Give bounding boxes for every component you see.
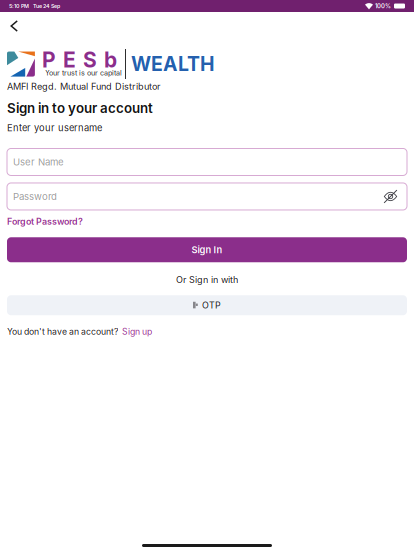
staticText: b [104, 47, 117, 73]
button[interactable]: Show password [380, 186, 402, 206]
staticText: Or Sign in with [176, 274, 238, 285]
staticText: Password [13, 191, 57, 202]
button[interactable]: Forgot Password? [7, 210, 83, 228]
staticText: 100% [375, 2, 391, 10]
staticText: User Name [13, 156, 64, 168]
staticText: S [83, 47, 97, 73]
staticText: You don't have an account? [7, 326, 118, 337]
staticText: Sign In [191, 244, 222, 255]
button[interactable]: Back [0, 12, 40, 40]
staticText: OTP [202, 300, 221, 311]
staticText: 5:10 PM [9, 3, 29, 9]
staticText: WEALTH [131, 52, 215, 76]
button[interactable]: Sign up [118, 326, 152, 337]
button[interactable]: OTP [7, 295, 407, 315]
staticText: Sign in to your account [7, 100, 153, 116]
staticText: E [63, 47, 76, 73]
staticText: AMFI Regd. Mutual Fund Distributor [7, 81, 160, 92]
staticText: Forgot Password? [7, 216, 83, 227]
staticText: Sign up [122, 326, 152, 337]
staticText: P [42, 47, 56, 73]
staticText: Tue 24 Sep [33, 3, 60, 9]
staticText: Enter your username [7, 122, 102, 133]
button[interactable]: Sign In [7, 237, 407, 262]
staticText: Your trust is our capital [45, 69, 122, 77]
